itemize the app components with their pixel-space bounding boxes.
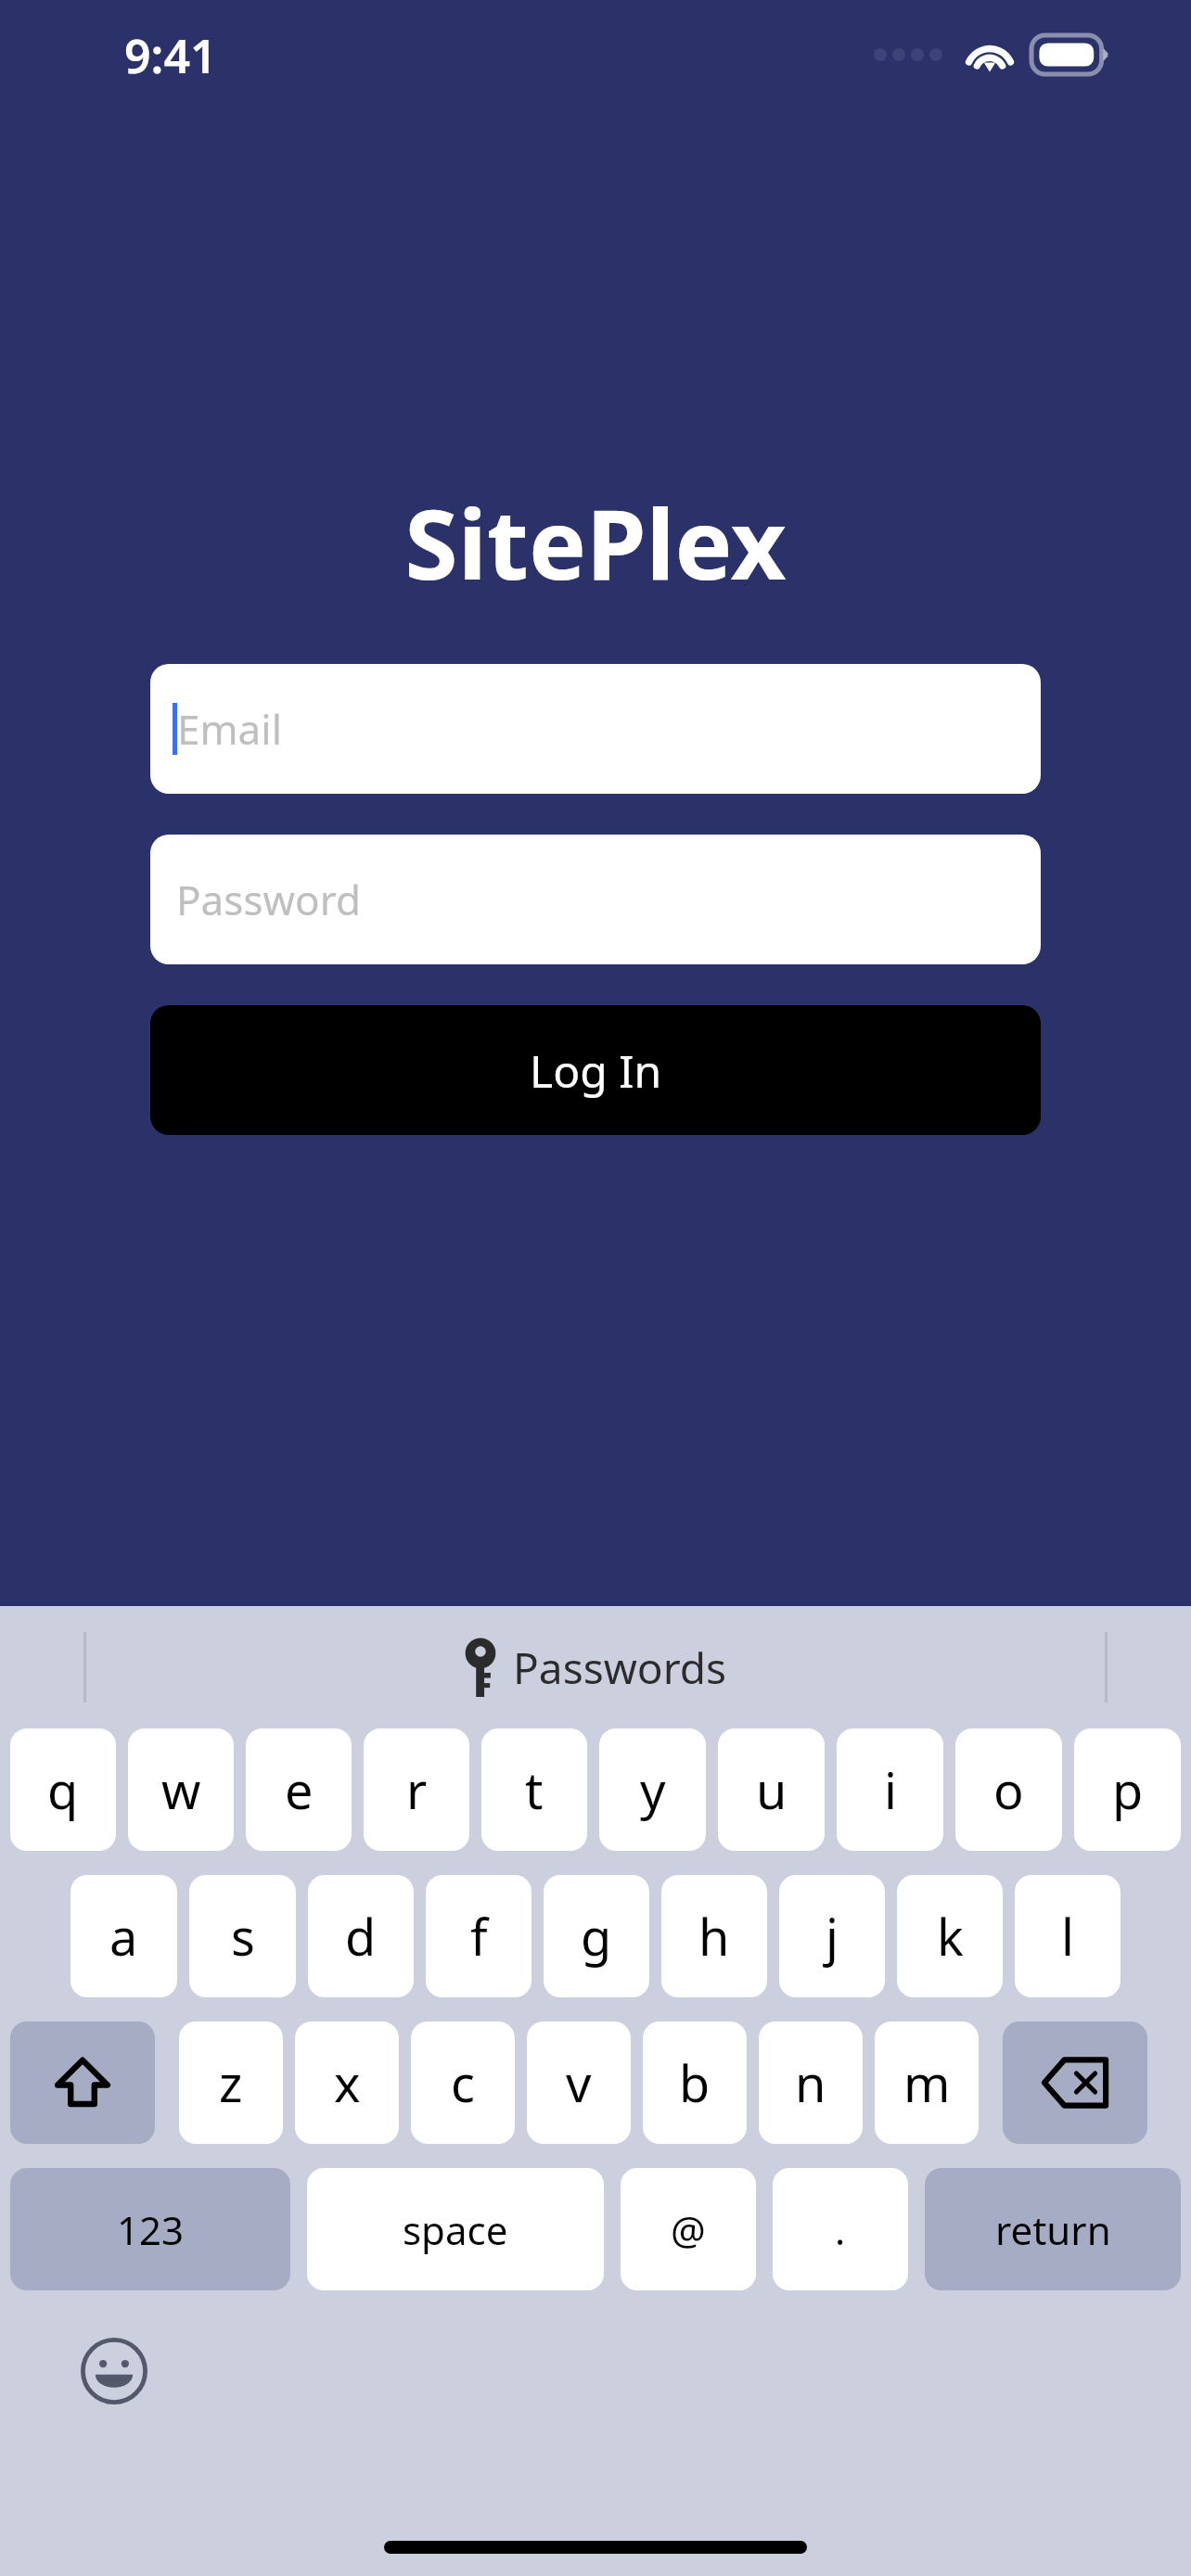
button[interactable]: return — [925, 2168, 1181, 2290]
staticText: b — [679, 2048, 711, 2117]
staticText: c — [451, 2048, 475, 2117]
staticText: p — [1112, 1755, 1144, 1824]
button[interactable]: h — [661, 1875, 767, 1997]
button[interactable]: g — [544, 1875, 649, 1997]
button[interactable]: Log In — [150, 1005, 1041, 1135]
staticText: z — [219, 2048, 243, 2117]
button[interactable]: a — [70, 1875, 177, 1997]
staticText: Email — [177, 701, 282, 757]
button[interactable]: s — [189, 1875, 296, 1997]
button[interactable]: space — [307, 2168, 604, 2290]
staticText: m — [903, 2048, 951, 2117]
staticText: q — [47, 1755, 79, 1824]
button[interactable]: u — [718, 1728, 825, 1851]
button[interactable]: j — [779, 1875, 885, 1997]
button[interactable]: Email — [150, 664, 1041, 794]
button[interactable]: k — [897, 1875, 1003, 1997]
button[interactable]: p — [1074, 1728, 1181, 1851]
staticText: o — [993, 1755, 1024, 1824]
staticText: d — [345, 1902, 377, 1970]
button[interactable]: b — [643, 2021, 747, 2144]
button[interactable]: Backspace — [1003, 2021, 1147, 2144]
staticText: s — [231, 1902, 255, 1970]
staticText: l — [1061, 1902, 1074, 1970]
staticText: y — [640, 1755, 666, 1824]
button[interactable]: Passwords — [465, 1639, 727, 1697]
button[interactable]: e — [246, 1728, 352, 1851]
staticText: 123 — [117, 2203, 185, 2256]
button[interactable]: n — [759, 2021, 863, 2144]
button[interactable]: f — [426, 1875, 531, 1997]
button[interactable]: z — [179, 2021, 283, 2144]
button[interactable]: d — [308, 1875, 414, 1997]
staticText: . — [835, 2203, 846, 2256]
button[interactable]: v — [527, 2021, 631, 2144]
button[interactable]: 123 — [10, 2168, 290, 2290]
staticText: w — [161, 1755, 201, 1824]
staticText: space — [403, 2203, 508, 2256]
staticText: u — [756, 1755, 788, 1824]
staticText: r — [406, 1755, 428, 1824]
staticText: Log In — [530, 1040, 662, 1101]
staticText: h — [698, 1902, 730, 1970]
button[interactable]: w — [128, 1728, 234, 1851]
button[interactable]: . — [773, 2168, 908, 2290]
staticText: SitePlex — [404, 477, 787, 608]
staticText: t — [525, 1755, 544, 1824]
button[interactable]: q — [10, 1728, 116, 1851]
button[interactable]: t — [481, 1728, 587, 1851]
button[interactable]: Emoji keyboard — [78, 2335, 150, 2407]
button[interactable]: l — [1015, 1875, 1121, 1997]
staticText: n — [795, 2048, 826, 2117]
button[interactable]: @ — [621, 2168, 756, 2290]
staticText: a — [109, 1902, 138, 1970]
button[interactable]: Shift — [10, 2021, 155, 2144]
staticText: k — [937, 1902, 964, 1970]
button[interactable]: o — [955, 1728, 1062, 1851]
staticText: f — [470, 1902, 488, 1970]
button[interactable]: m — [875, 2021, 979, 2144]
staticText: return — [995, 2203, 1111, 2256]
staticText: e — [285, 1755, 314, 1824]
staticText: 9:41 — [124, 24, 217, 87]
staticText: i — [884, 1755, 897, 1824]
button[interactable]: r — [364, 1728, 469, 1851]
staticText: v — [566, 2048, 592, 2117]
button[interactable]: i — [837, 1728, 943, 1851]
staticText: g — [581, 1902, 612, 1970]
button[interactable]: Password — [150, 835, 1041, 964]
staticText: Passwords — [513, 1639, 727, 1697]
staticText: j — [826, 1902, 839, 1970]
button[interactable]: x — [295, 2021, 399, 2144]
staticText: Password — [176, 872, 362, 927]
button[interactable]: c — [411, 2021, 515, 2144]
staticText: @ — [671, 2203, 706, 2256]
staticText: x — [334, 2048, 361, 2117]
button[interactable]: y — [599, 1728, 706, 1851]
